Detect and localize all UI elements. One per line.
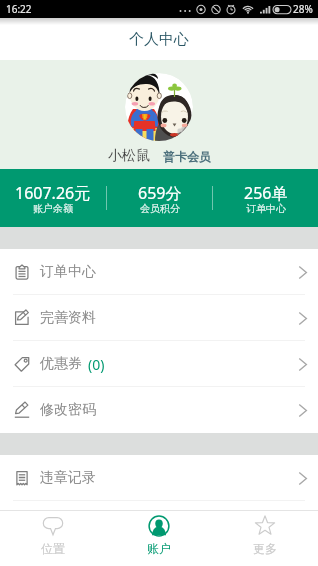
staticText: (0) [88, 355, 105, 374]
staticText: 修改密码 [40, 401, 96, 419]
staticText: 优惠券 [40, 355, 82, 373]
staticText: 小松鼠 [108, 147, 150, 165]
staticText: 违章记录 [40, 469, 96, 487]
staticText: 账户余额 [33, 202, 73, 215]
staticText: 256单 [244, 182, 288, 204]
button[interactable]: 订单中心 [0, 249, 318, 295]
button[interactable]: 更多 [212, 511, 318, 566]
staticText: 位置 [41, 541, 65, 556]
staticText: 订单中心 [246, 202, 286, 215]
staticText: 订单中心 [40, 263, 96, 281]
staticText: 个人中心 [129, 30, 189, 49]
staticText: 1607.26元 [15, 182, 91, 204]
staticText: 更多 [253, 541, 277, 556]
button[interactable]: 完善资料 [0, 295, 318, 341]
button[interactable]: 修改密码 [0, 387, 318, 433]
button[interactable]: 位置 [0, 511, 106, 566]
button[interactable]: 256单 [213, 169, 318, 227]
button[interactable]: 659分 [107, 169, 212, 227]
staticText: 会员积分 [140, 202, 180, 215]
button[interactable]: Change profile photo [125, 73, 193, 141]
staticText: 16:22 [6, 2, 32, 16]
staticText: 28% [293, 2, 313, 16]
staticText: 普卡会员 [163, 149, 211, 164]
button[interactable]: 1607.26元 [0, 169, 106, 227]
button[interactable]: 优惠券 [0, 341, 318, 387]
staticText: 账户 [147, 541, 171, 556]
button[interactable]: 违章记录 [0, 455, 318, 501]
staticText: 659分 [138, 182, 182, 204]
button[interactable]: 账户 [106, 511, 212, 566]
staticText: 完善资料 [40, 309, 96, 327]
